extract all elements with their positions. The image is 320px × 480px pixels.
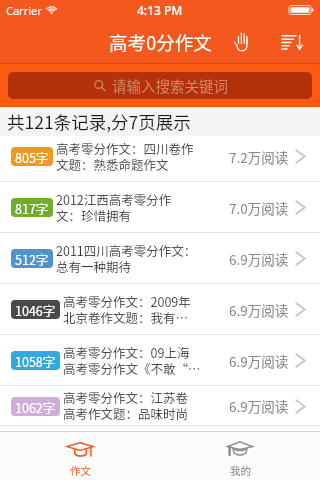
- staticText: 4:13 PM: [137, 2, 183, 18]
- staticText: 2011四川高考零分作文： 总有一种期待: [56, 243, 197, 275]
- button[interactable]: 1046字: [0, 284, 320, 335]
- staticText: 请输入搜索关键词: [112, 75, 228, 96]
- staticText: 高考0分作文: [109, 29, 212, 56]
- staticText: 作文: [70, 463, 91, 478]
- button[interactable]: 817字: [0, 182, 320, 233]
- button[interactable]: 作文: [0, 431, 160, 480]
- staticText: Carrier: [6, 3, 42, 18]
- staticText: 512字: [15, 250, 49, 268]
- button[interactable]: 805字: [0, 136, 320, 182]
- staticText: 6.9万阅读: [229, 300, 289, 320]
- staticText: 高考零分作文：2009年 北京卷作文题：我有…: [63, 294, 191, 326]
- staticText: 1058字: [15, 352, 56, 370]
- button[interactable]: 1062字: [0, 386, 320, 426]
- staticText: 我的: [230, 463, 251, 478]
- button[interactable]: 1058字: [0, 335, 320, 386]
- staticText: 6.9万阅读: [229, 396, 289, 416]
- staticText: 高考零分作文：四川卷作 文题：熟悉命题作文: [56, 141, 194, 173]
- button[interactable]: Sort: [272, 22, 312, 62]
- button[interactable]: 我的: [160, 431, 320, 480]
- staticText: 7.2万阅读: [229, 147, 289, 167]
- staticText: 7.0万阅读: [229, 198, 289, 218]
- button[interactable]: 请输入搜索关键词: [8, 72, 312, 99]
- button[interactable]: 512字: [0, 233, 320, 284]
- staticText: 1046字: [15, 301, 56, 319]
- staticText: 高考零分作文：09上海 高考零分作文《不敢“…: [63, 345, 201, 377]
- button[interactable]: Hand gesture: [223, 22, 259, 62]
- staticText: 共121条记录,分7页展示: [7, 109, 191, 134]
- staticText: 2012江西高考零分作 文：珍惜拥有: [56, 192, 172, 224]
- staticText: 805字: [15, 148, 49, 166]
- staticText: 6.9万阅读: [229, 351, 289, 371]
- staticText: 817字: [15, 199, 49, 217]
- staticText: 1062字: [15, 398, 56, 416]
- staticText: 高考零分作文：江苏卷 高考作文题：品味时尚: [63, 390, 189, 422]
- staticText: 6.9万阅读: [229, 249, 289, 269]
